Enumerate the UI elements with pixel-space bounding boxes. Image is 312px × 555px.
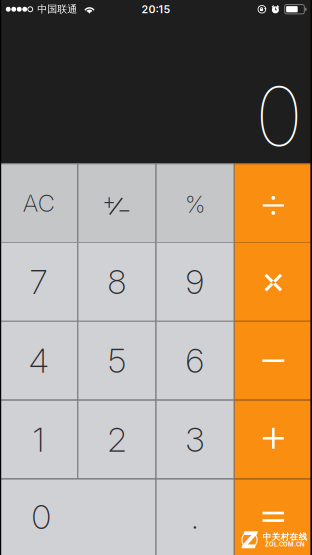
staticText: 20:15	[141, 3, 170, 16]
button[interactable]: 1	[0, 401, 77, 478]
button[interactable]: 6	[156, 322, 234, 400]
staticText: 6	[186, 340, 205, 381]
staticText: 0	[31, 497, 51, 537]
staticText: AC	[23, 189, 55, 218]
staticText: .	[191, 496, 199, 537]
staticText: 7	[30, 262, 48, 302]
button[interactable]: 5	[78, 322, 156, 400]
button[interactable]: Equals	[235, 479, 312, 555]
button[interactable]: Percent	[156, 164, 234, 242]
button[interactable]: 7	[0, 243, 77, 321]
staticText: %	[185, 190, 205, 218]
button[interactable]: All clear	[0, 164, 77, 242]
button[interactable]: 8	[78, 243, 156, 321]
staticText: 5	[108, 340, 126, 381]
staticText: 8	[107, 262, 126, 302]
button[interactable]: Plus	[235, 401, 312, 478]
staticText: 0	[255, 67, 303, 165]
staticText: 中国联通	[37, 3, 77, 16]
button[interactable]: Multiply	[235, 243, 312, 321]
button[interactable]: Divide	[235, 164, 312, 242]
button[interactable]: 2	[78, 401, 156, 478]
button[interactable]: Minus	[235, 322, 312, 400]
staticText: 4	[29, 340, 49, 381]
staticText: 中关村在线	[262, 531, 307, 542]
button[interactable]: Plus or minus	[78, 164, 156, 242]
staticText: 9	[186, 262, 205, 302]
staticText: 1	[33, 419, 45, 460]
button[interactable]: 4	[0, 322, 77, 400]
staticText: 3	[186, 419, 205, 460]
staticText: 2	[107, 419, 126, 460]
button[interactable]: Zero	[0, 479, 156, 555]
staticText: ZOL.COM.CN	[265, 541, 305, 548]
button[interactable]: 3	[156, 401, 234, 478]
staticText: Z	[241, 526, 257, 554]
button[interactable]: Decimal point	[156, 479, 234, 555]
button[interactable]: 9	[156, 243, 234, 321]
